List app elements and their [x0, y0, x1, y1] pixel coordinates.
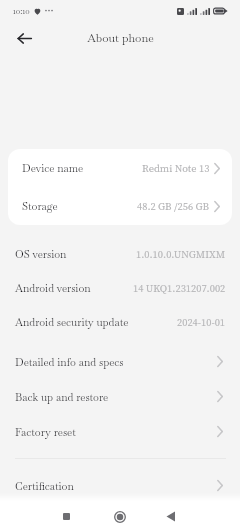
- button[interactable]: Detailed info and specs: [0, 344, 240, 379]
- button[interactable]: Home: [102, 501, 138, 532]
- staticText: Android security update: [15, 315, 129, 329]
- staticText: Factory reset: [15, 425, 76, 439]
- button[interactable]: Back: [152, 501, 188, 532]
- button[interactable]: Certification: [0, 468, 240, 503]
- staticText: 1.0.10.0.UNGMIXM: [136, 247, 226, 261]
- button[interactable]: Recent apps: [48, 501, 84, 532]
- staticText: Certification: [15, 479, 74, 493]
- staticText: 48.2 GB /256 GB: [137, 199, 210, 213]
- staticText: Back up and restore: [15, 390, 109, 404]
- staticText: 14 UKQ1.231207.002: [133, 281, 226, 295]
- staticText: 10:10: [13, 5, 30, 17]
- button[interactable]: Back up and restore: [0, 379, 240, 414]
- button[interactable]: Android version: [0, 271, 240, 305]
- staticText: OS version: [15, 247, 67, 261]
- staticText: Storage: [22, 199, 58, 213]
- button[interactable]: Android security update: [0, 305, 240, 339]
- button[interactable]: OS version: [0, 237, 240, 271]
- staticText: Redmi Note 13: [142, 161, 210, 175]
- button[interactable]: Factory reset: [0, 414, 240, 449]
- button[interactable]: Device name: [8, 149, 232, 187]
- button[interactable]: Storage: [8, 187, 232, 225]
- staticText: About phone: [87, 31, 154, 46]
- staticText: Android version: [15, 281, 91, 295]
- staticText: Device name: [22, 161, 84, 175]
- staticText: 2024-10-01: [177, 315, 226, 329]
- button[interactable]: Back: [11, 25, 37, 51]
- staticText: Detailed info and specs: [15, 355, 124, 369]
